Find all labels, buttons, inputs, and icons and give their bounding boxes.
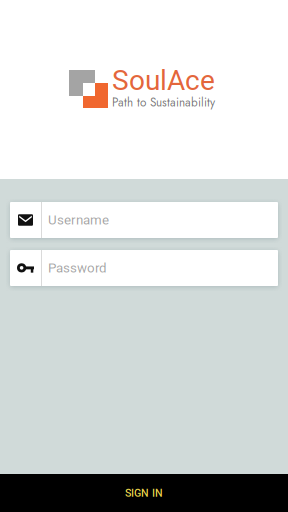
staticText: SIGN IN <box>125 487 163 499</box>
staticText: SoulAce <box>112 64 215 97</box>
staticText: Username <box>48 212 109 228</box>
button[interactable]: Password <box>10 250 278 286</box>
button[interactable]: Username <box>10 202 278 238</box>
button[interactable]: SIGN IN <box>0 474 288 512</box>
staticText: Path to Sustainability <box>112 94 215 111</box>
staticText: Password <box>48 260 107 276</box>
